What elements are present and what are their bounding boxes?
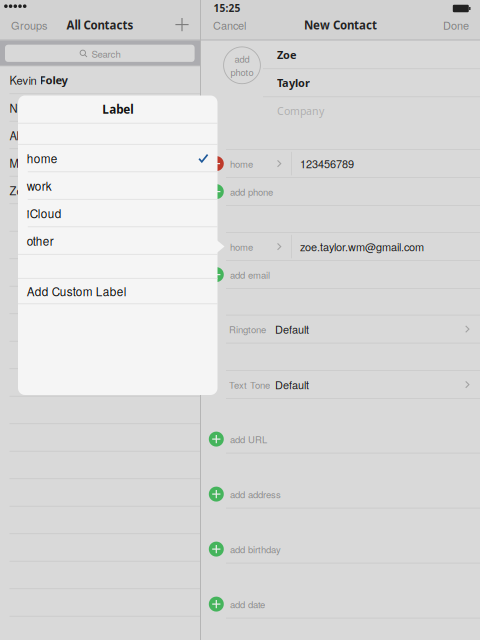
staticText: All Contacts (66, 17, 133, 33)
button[interactable]: Add contact (169, 13, 195, 37)
staticText: home (27, 150, 58, 167)
staticText: Text Tone (229, 378, 270, 391)
button[interactable]: add date (201, 597, 480, 612)
staticText: photo (230, 65, 253, 79)
button[interactable]: iCloud (18, 205, 217, 222)
staticText: other (27, 232, 54, 249)
staticText: home (230, 157, 253, 170)
staticText: Ringtone (229, 322, 266, 336)
button[interactable]: Zoe (0, 177, 200, 204)
button[interactable]: add URL (201, 432, 480, 447)
staticText: Foley (39, 72, 67, 88)
button[interactable]: Maria (0, 149, 200, 176)
staticText: add (234, 52, 249, 65)
staticText: Groups (11, 17, 47, 33)
button[interactable]: add address (201, 487, 480, 502)
staticText: Nina (9, 100, 34, 116)
button[interactable]: Groups (11, 13, 57, 37)
staticText: home (230, 240, 253, 253)
button[interactable]: Ringtone (201, 321, 480, 337)
staticText: iCloud (27, 205, 62, 222)
staticText: work (27, 177, 52, 194)
button[interactable]: Kevin (0, 66, 200, 94)
button[interactable]: Add Custom Label (18, 283, 217, 300)
staticText: Default (275, 377, 309, 392)
staticText: Kevin (9, 72, 39, 88)
staticText: add address (230, 487, 281, 501)
button[interactable]: other (18, 232, 217, 249)
staticText: Add Custom Label (27, 283, 127, 300)
button[interactable]: Done (433, 13, 469, 37)
button[interactable]: work (18, 177, 217, 194)
staticText: Cancel (213, 17, 246, 33)
button[interactable]: Alan (0, 122, 200, 149)
staticText: Taylor (277, 75, 310, 90)
staticText: Company (277, 104, 324, 118)
staticText: 15:25 (213, 1, 240, 15)
staticText: Maria (9, 155, 39, 171)
staticText: New Contact (304, 17, 377, 33)
button[interactable]: Cancel (213, 13, 257, 37)
button[interactable]: home (201, 152, 480, 175)
staticText: Taylor (31, 183, 65, 198)
staticText: Zoe (9, 182, 31, 198)
staticText: Alan (9, 127, 33, 143)
button[interactable]: home (18, 150, 217, 167)
button[interactable]: add phone (201, 184, 480, 199)
button[interactable]: Taylor (201, 75, 480, 90)
staticText: add date (230, 597, 265, 611)
staticText: zoe.taylor.wm@gmail.com (300, 239, 424, 254)
button[interactable]: Nina (0, 94, 200, 121)
staticText: Label (102, 101, 133, 117)
staticText: Search (91, 47, 120, 60)
button[interactable]: add email (201, 267, 480, 282)
button[interactable]: Zoe (201, 47, 480, 62)
staticText: add URL (230, 432, 267, 446)
staticText: add birthday (230, 542, 281, 556)
staticText: Weiss (39, 155, 72, 170)
staticText: Done (443, 17, 469, 33)
staticText: Default (275, 321, 309, 337)
staticText: 123456789 (300, 156, 354, 171)
staticText: add phone (230, 185, 273, 198)
staticText: Zoe (277, 47, 297, 62)
button[interactable]: add birthday (201, 542, 480, 557)
button[interactable]: Add photo (224, 47, 260, 84)
staticText: add email (230, 268, 270, 281)
button[interactable]: Company (201, 104, 480, 118)
button[interactable]: home (201, 235, 480, 258)
button[interactable]: Text Tone (201, 377, 480, 392)
